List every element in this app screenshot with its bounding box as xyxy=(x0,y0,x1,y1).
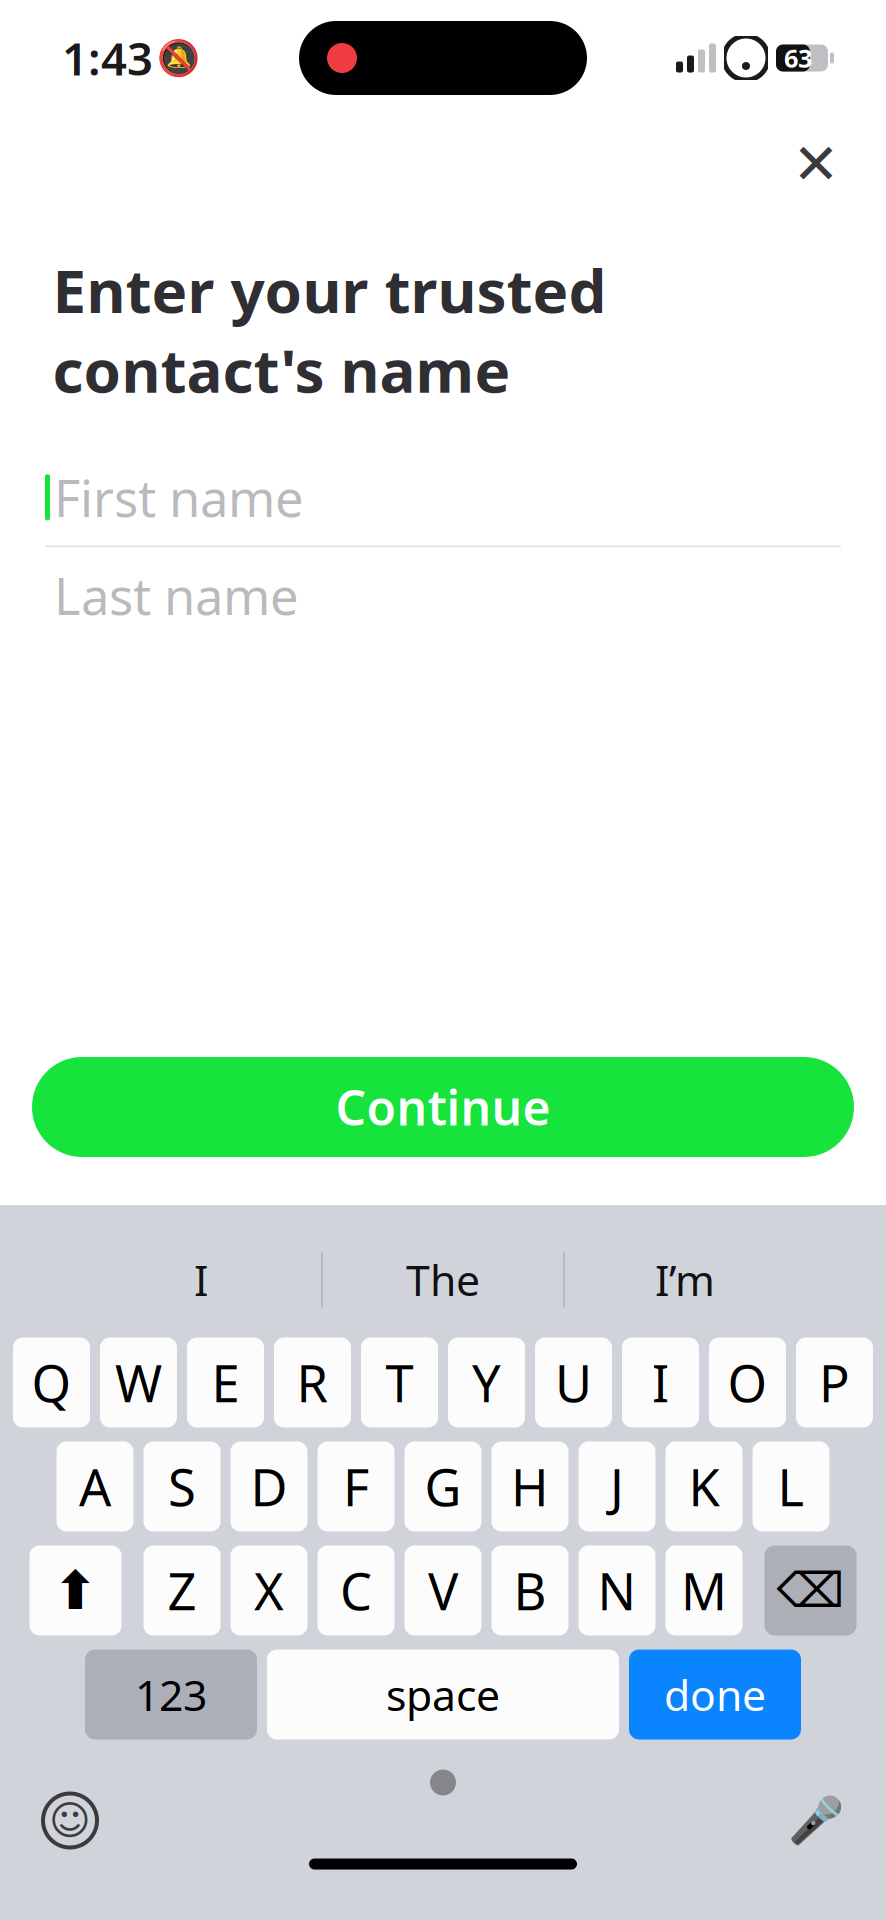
button[interactable]: C xyxy=(317,1545,394,1635)
staticText: G xyxy=(424,1453,461,1520)
button[interactable]: R xyxy=(274,1337,351,1427)
staticText: T xyxy=(385,1349,413,1416)
staticText: ⌫ xyxy=(776,1563,844,1618)
staticText: space xyxy=(386,1666,500,1723)
button[interactable]: U xyxy=(535,1337,612,1427)
button[interactable]: K xyxy=(665,1441,742,1531)
button[interactable]: First name xyxy=(0,449,886,545)
button[interactable]: O xyxy=(709,1337,786,1427)
staticText: B xyxy=(513,1557,546,1624)
button[interactable]: Dictation xyxy=(778,1782,854,1858)
button[interactable]: X xyxy=(230,1545,307,1635)
staticText: N xyxy=(597,1557,636,1624)
button[interactable]: H xyxy=(491,1441,568,1531)
button[interactable]: A xyxy=(56,1441,133,1531)
staticText: M xyxy=(681,1557,727,1624)
staticText: U xyxy=(555,1349,592,1416)
button[interactable]: B xyxy=(491,1545,568,1635)
button[interactable]: Shift xyxy=(29,1545,121,1635)
staticText: S xyxy=(168,1453,196,1520)
staticText: R xyxy=(296,1349,328,1416)
button[interactable]: Continue xyxy=(0,1057,886,1157)
staticText: K xyxy=(688,1453,719,1520)
button[interactable]: F xyxy=(317,1441,394,1531)
staticText: L xyxy=(777,1453,804,1520)
staticText: 🎤 xyxy=(788,1795,844,1846)
button[interactable]: T xyxy=(361,1337,438,1427)
staticText: 🔕 xyxy=(156,38,199,78)
staticText: A xyxy=(79,1453,111,1520)
button[interactable]: P xyxy=(796,1337,873,1427)
button[interactable]: I xyxy=(622,1337,699,1427)
button[interactable]: M xyxy=(665,1545,742,1635)
staticText: P xyxy=(819,1349,850,1416)
staticText: ✕ xyxy=(792,132,839,196)
staticText: ☺ xyxy=(49,1798,91,1843)
button[interactable]: The xyxy=(323,1223,563,1335)
staticText: Z xyxy=(167,1557,196,1624)
button[interactable]: Z xyxy=(143,1545,220,1635)
staticText: ⬆ xyxy=(53,1560,98,1621)
button[interactable]: Close xyxy=(780,128,852,200)
staticText: 123 xyxy=(135,1666,207,1723)
button[interactable]: D xyxy=(230,1441,307,1531)
button[interactable]: N xyxy=(578,1545,655,1635)
staticText: Y xyxy=(472,1349,501,1416)
staticText: done xyxy=(664,1666,766,1723)
button[interactable]: Last name xyxy=(0,547,886,643)
staticText: I xyxy=(194,1251,208,1308)
button[interactable]: space xyxy=(267,1649,619,1739)
button[interactable]: E xyxy=(187,1337,264,1427)
staticText: Enter your trusted contact's name xyxy=(52,250,606,409)
staticText: First name xyxy=(54,464,304,531)
button[interactable]: Y xyxy=(448,1337,525,1427)
staticText: 63 xyxy=(784,41,812,75)
staticText: V xyxy=(428,1557,458,1624)
staticText: Continue xyxy=(335,1075,550,1139)
button[interactable]: G xyxy=(404,1441,481,1531)
button[interactable]: J xyxy=(578,1441,655,1531)
button[interactable]: W xyxy=(100,1337,177,1427)
staticText: Q xyxy=(31,1349,71,1416)
staticText: I’m xyxy=(655,1251,715,1308)
staticText: Last name xyxy=(54,562,299,629)
button[interactable]: Emoji xyxy=(32,1782,108,1858)
staticText: J xyxy=(610,1453,624,1520)
button[interactable]: V xyxy=(404,1545,481,1635)
button[interactable]: Backspace xyxy=(764,1545,856,1635)
button[interactable]: L xyxy=(752,1441,829,1531)
button[interactable]: done xyxy=(629,1649,801,1739)
staticText: F xyxy=(343,1453,369,1520)
button[interactable]: Q xyxy=(13,1337,90,1427)
button[interactable]: I xyxy=(81,1223,321,1335)
staticText: X xyxy=(254,1557,284,1624)
staticText: H xyxy=(511,1453,549,1520)
staticText: O xyxy=(727,1349,767,1416)
staticText: E xyxy=(211,1349,239,1416)
staticText: W xyxy=(115,1349,162,1416)
staticText: 1:43 xyxy=(62,28,153,88)
staticText: The xyxy=(406,1251,480,1308)
staticText: I xyxy=(652,1349,669,1416)
button[interactable]: S xyxy=(143,1441,220,1531)
button[interactable]: I’m xyxy=(565,1223,805,1335)
staticText: C xyxy=(340,1557,372,1624)
button[interactable]: 123 xyxy=(85,1649,257,1739)
staticText: D xyxy=(250,1453,287,1520)
